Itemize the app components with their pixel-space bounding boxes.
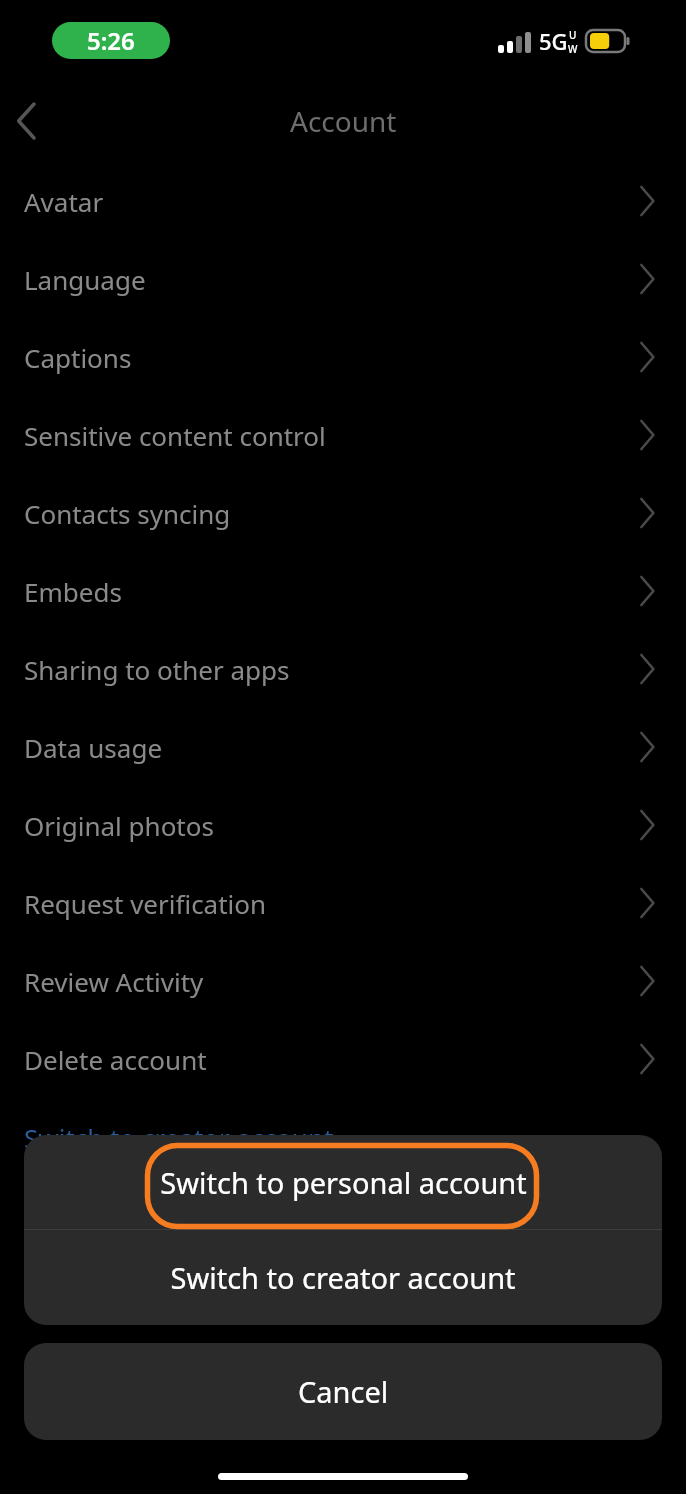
staticText: U (569, 28, 577, 42)
staticText: Original photos (24, 808, 214, 843)
staticText: Switch to creator account (24, 1120, 334, 1155)
button[interactable]: Switch to personal account (24, 1135, 662, 1229)
staticText: Avatar (24, 184, 104, 219)
staticText: Language (24, 262, 146, 297)
button[interactable]: Delete account (0, 1020, 686, 1098)
staticText: W (568, 42, 578, 54)
staticText: 5:26 (87, 24, 135, 57)
staticText: 5G (539, 26, 568, 56)
button[interactable]: Embeds (0, 552, 686, 630)
button[interactable]: Language (0, 240, 686, 318)
button[interactable]: Back (2, 96, 52, 146)
staticText: Sharing to other apps (24, 652, 290, 687)
staticText: Switch to creator account (170, 1258, 516, 1297)
staticText: Account (290, 102, 397, 140)
button[interactable]: Cancel (24, 1343, 662, 1440)
staticText: Captions (24, 340, 132, 375)
staticText: Request verification (24, 886, 267, 921)
staticText: Contacts syncing (24, 496, 231, 531)
button[interactable]: Request verification (0, 864, 686, 942)
button[interactable]: Avatar (0, 162, 686, 240)
button[interactable]: Original photos (0, 786, 686, 864)
button[interactable]: Captions (0, 318, 686, 396)
staticText: Data usage (24, 730, 163, 765)
staticText: Embeds (24, 574, 122, 609)
staticText: Sensitive content control (24, 418, 326, 453)
staticText: Delete account (24, 1042, 207, 1077)
button[interactable]: Contacts syncing (0, 474, 686, 552)
button[interactable]: Review Activity (0, 942, 686, 1020)
staticText: Cancel (298, 1372, 389, 1411)
button[interactable]: Sensitive content control (0, 396, 686, 474)
button[interactable]: Switch to creator account (24, 1230, 662, 1325)
staticText: Review Activity (24, 964, 204, 999)
button[interactable]: Data usage (0, 708, 686, 786)
staticText: Switch to personal account (160, 1163, 527, 1202)
button[interactable]: Sharing to other apps (0, 630, 686, 708)
